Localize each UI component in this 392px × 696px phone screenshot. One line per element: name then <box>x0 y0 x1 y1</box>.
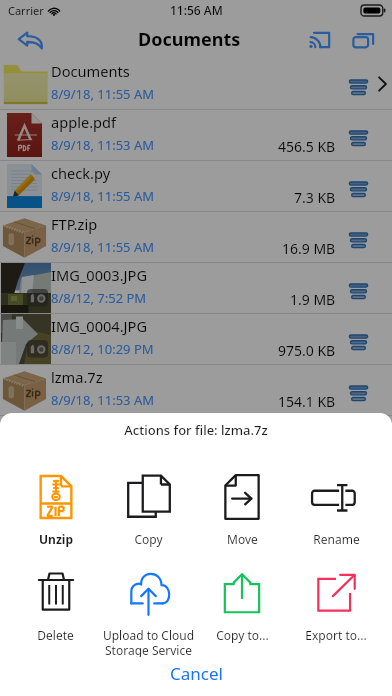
staticText: 16.9 MB <box>282 239 336 258</box>
staticText: Export to... <box>305 627 367 643</box>
staticText: Documents <box>51 61 130 81</box>
button[interactable]: apple.pdf <box>0 110 392 160</box>
button[interactable]: More actions <box>344 218 372 262</box>
staticText: 154.1 KB <box>278 392 336 411</box>
button[interactable]: More actions <box>344 116 372 160</box>
staticText: 8/8/12, 10:29 PM <box>51 340 154 358</box>
button[interactable]: More actions <box>344 269 372 313</box>
staticText: 8/8/12, 7:52 PM <box>51 289 147 307</box>
button[interactable]: Cancel <box>0 651 392 695</box>
button[interactable]: Rename <box>289 471 383 561</box>
staticText: lzma.7z <box>51 367 103 387</box>
staticText: 8/9/18, 11:53 AM <box>51 136 154 154</box>
staticText: 11:56 AM <box>170 2 223 18</box>
staticText: Unzip <box>39 531 73 547</box>
button[interactable]: Cast <box>302 24 336 56</box>
staticText: Actions for file: lzma.7z <box>0 421 392 439</box>
staticText: 8/9/18, 11:55 AM <box>51 85 154 103</box>
button[interactable]: Windows <box>346 24 380 56</box>
staticText: Cancel <box>170 662 223 685</box>
button[interactable]: Copy <box>102 471 195 561</box>
staticText: FTP.zip <box>51 214 98 234</box>
button[interactable]: Copy to... <box>195 567 289 657</box>
staticText: Move <box>227 531 258 547</box>
staticText: Copy <box>134 531 163 547</box>
staticText: Copy to... <box>216 627 269 643</box>
button[interactable]: lzma.7z <box>0 365 392 415</box>
staticText: 8/9/18, 11:53 AM <box>51 391 154 409</box>
button[interactable]: Move <box>195 471 289 561</box>
button[interactable]: Upload to Cloud Storage Service <box>102 567 195 657</box>
button[interactable]: More actions <box>344 65 372 109</box>
button[interactable]: Delete <box>9 567 102 657</box>
button[interactable]: FTP.zip <box>0 212 392 262</box>
button[interactable]: IMG_0004.JPG <box>0 314 392 364</box>
staticText: Carrier <box>8 3 44 18</box>
button[interactable]: Back <box>7 23 51 57</box>
staticText: IMG_0003.JPG <box>51 265 148 285</box>
staticText: 8/9/18, 11:55 AM <box>51 187 154 205</box>
staticText: Rename <box>313 531 360 547</box>
staticText: 975.0 KB <box>278 341 336 360</box>
staticText: 7.3 KB <box>294 188 336 207</box>
staticText: 456.5 KB <box>278 137 336 156</box>
button[interactable]: Unzip <box>9 471 102 561</box>
staticText: Documents <box>138 27 241 52</box>
staticText: apple.pdf <box>51 112 117 132</box>
button[interactable]: Documents <box>0 59 392 109</box>
staticText: 8/9/18, 11:55 AM <box>51 238 154 256</box>
staticText: Delete <box>37 627 74 643</box>
staticText: 1.9 MB <box>290 290 336 309</box>
button[interactable]: More actions <box>344 167 372 211</box>
button[interactable]: IMG_0003.JPG <box>0 263 392 313</box>
button[interactable]: check.py <box>0 161 392 211</box>
staticText: Upload to Cloud Storage Service <box>102 627 195 657</box>
staticText: check.py <box>51 163 111 183</box>
button[interactable]: More actions <box>344 320 372 364</box>
staticText: IMG_0004.JPG <box>51 316 148 336</box>
button[interactable]: Export to... <box>289 567 383 657</box>
button[interactable]: More actions <box>344 371 372 415</box>
